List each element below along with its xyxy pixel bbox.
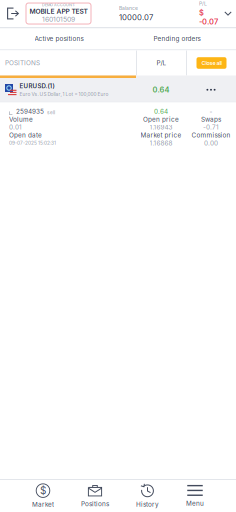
staticText: 0.00 bbox=[204, 139, 218, 147]
button[interactable]: $ bbox=[32, 480, 54, 512]
staticText: $ bbox=[40, 485, 46, 497]
staticText: Menu bbox=[186, 500, 204, 507]
button[interactable]: More actions bbox=[186, 78, 236, 101]
button[interactable]: DEMO ACCOUNT: bbox=[26, 3, 91, 24]
button[interactable]: Close all bbox=[196, 57, 226, 69]
staticText: Close all bbox=[201, 60, 221, 66]
button[interactable]: Menu bbox=[186, 481, 204, 511]
staticText: Euro Vs. US Dollar, 1 Lot = 100,000 Euro bbox=[19, 91, 108, 97]
button[interactable]: Positions bbox=[81, 480, 109, 512]
staticText: sell bbox=[47, 110, 55, 115]
staticText: 1.16943 bbox=[149, 123, 172, 131]
staticText: Commission bbox=[191, 131, 230, 139]
staticText: History bbox=[136, 501, 159, 508]
button[interactable]: Expand account details bbox=[221, 10, 236, 16]
button[interactable]: Log out bbox=[0, 7, 26, 19]
staticText: - bbox=[209, 108, 212, 115]
staticText: Active positions bbox=[34, 35, 83, 43]
staticText: Open date bbox=[9, 131, 42, 139]
staticText: EURUSD.(1) bbox=[19, 82, 54, 90]
staticText: 1.16868 bbox=[149, 139, 172, 147]
staticText: 0.01 bbox=[9, 123, 22, 131]
staticText: POSITIONS bbox=[5, 59, 40, 67]
staticText: -0.71 bbox=[203, 123, 219, 131]
button[interactable]: History bbox=[136, 480, 159, 512]
staticText: 0.64 bbox=[152, 85, 169, 94]
staticText: Balance bbox=[119, 5, 138, 11]
staticText: Positions bbox=[81, 500, 109, 508]
staticText: Pending orders bbox=[153, 35, 200, 43]
staticText: P/L bbox=[199, 1, 207, 7]
button[interactable]: Pending orders bbox=[118, 28, 236, 49]
staticText: 10000.07 bbox=[119, 13, 153, 22]
staticText: Open price bbox=[143, 115, 179, 123]
button[interactable]: Active positions bbox=[0, 28, 118, 49]
staticText: DEMO ACCOUNT: bbox=[42, 2, 75, 7]
staticText: Volume bbox=[9, 115, 33, 123]
staticText: 2594935 bbox=[16, 108, 44, 115]
staticText: Market price bbox=[140, 131, 181, 139]
staticText: Market bbox=[32, 501, 54, 508]
staticText: $ -0.07 bbox=[199, 8, 218, 26]
staticText: 0.64 bbox=[154, 108, 168, 115]
staticText: MOBILE APP TEST bbox=[29, 7, 87, 15]
staticText: Swaps bbox=[201, 115, 221, 123]
staticText: 160101509 bbox=[42, 15, 75, 23]
staticText: P/L bbox=[156, 59, 166, 67]
staticText: 09-07-2025 15:02:31 bbox=[9, 140, 56, 146]
